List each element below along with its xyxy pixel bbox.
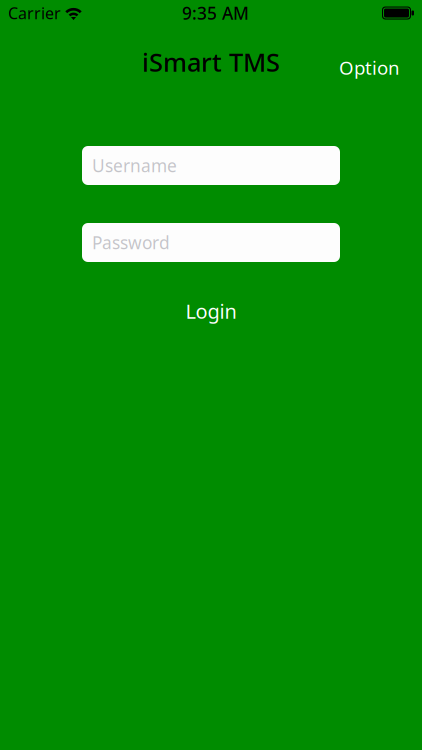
staticText: Login <box>185 298 236 324</box>
staticText: Username <box>92 154 177 177</box>
staticText: Option <box>339 55 400 80</box>
button[interactable]: Username <box>82 146 340 185</box>
button[interactable]: Password <box>82 223 340 262</box>
staticText: 9:35 AM <box>182 1 249 24</box>
button[interactable]: Option <box>330 48 409 87</box>
staticText: Password <box>92 231 170 254</box>
staticText: iSmart TMS <box>142 45 280 79</box>
button[interactable]: Login <box>82 294 340 328</box>
staticText: Carrier <box>8 2 61 24</box>
